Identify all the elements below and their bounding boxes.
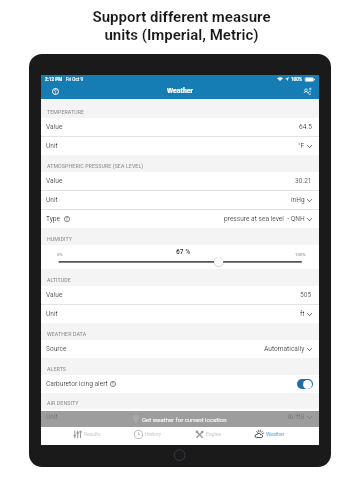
staticText: Unit [46, 196, 58, 204]
button[interactable]: Carburetor icing alert [41, 375, 319, 393]
staticText: 100% [291, 77, 303, 82]
button[interactable]: Unit [41, 191, 319, 209]
button[interactable]: Help [49, 85, 61, 97]
button[interactable]: Source [41, 340, 319, 358]
button[interactable]: Results [56, 425, 117, 443]
button[interactable]: Weather [239, 425, 300, 443]
staticText: 100% [295, 252, 306, 257]
staticText: Engine [206, 431, 222, 437]
button[interactable]: Get weather for current location [41, 411, 319, 427]
staticText: TEMPERATURE [47, 109, 85, 115]
button[interactable]: Account settings [301, 85, 314, 98]
staticText: lb/ft3 [288, 413, 305, 421]
staticText: Value [46, 177, 63, 185]
button[interactable]: Value [41, 172, 319, 190]
staticText: Value [46, 291, 63, 299]
staticText: units (Imperial, Metric) [104, 26, 259, 44]
staticText: Results [84, 431, 101, 437]
staticText: Source [46, 345, 67, 353]
button[interactable]: Engine [178, 425, 239, 443]
button[interactable]: Value [41, 118, 319, 136]
staticText: Automatically [264, 345, 305, 353]
staticText: Unit [46, 413, 58, 421]
staticText: 0% [57, 252, 63, 257]
button[interactable]: Unit [41, 137, 319, 155]
staticText: Type [46, 215, 61, 223]
staticText: Fri Oct 9 [66, 77, 84, 82]
staticText: ALTITUDE [47, 277, 71, 283]
button[interactable]: History [117, 425, 178, 443]
staticText: ATMOSPHERIC PRESSURE (SEA LEVEL) [47, 163, 144, 169]
staticText: Value [46, 123, 63, 131]
staticText: Support different measure [92, 8, 271, 26]
staticText: Weather [167, 87, 194, 95]
staticText: Carburetor icing alert [46, 380, 108, 388]
staticText: Weather [266, 431, 285, 437]
staticText: 505 [300, 291, 312, 299]
staticText: ft [300, 310, 305, 318]
staticText: 2:12 PM [45, 77, 63, 82]
staticText: 67 % [176, 248, 191, 256]
staticText: ALERTS [47, 366, 67, 372]
button[interactable]: Type [41, 210, 319, 228]
staticText: Get weather for current location [142, 416, 227, 423]
staticText: HUMIDITY [47, 236, 73, 242]
button[interactable]: Value [41, 286, 319, 304]
staticText: inHg [291, 196, 305, 204]
staticText: °F [298, 142, 305, 150]
button[interactable]: Unit [41, 409, 319, 425]
staticText: AIR DENSITY [47, 400, 79, 406]
staticText: pressure at sea level - QNH [224, 215, 305, 223]
staticText: Unit [46, 142, 58, 150]
staticText: History [145, 431, 161, 437]
staticText: WEATHER DATA [47, 331, 87, 337]
staticText: Unit [46, 310, 58, 318]
staticText: 64.5 [299, 123, 312, 131]
staticText: 30.21 [295, 177, 312, 185]
button[interactable]: Unit [41, 305, 319, 323]
